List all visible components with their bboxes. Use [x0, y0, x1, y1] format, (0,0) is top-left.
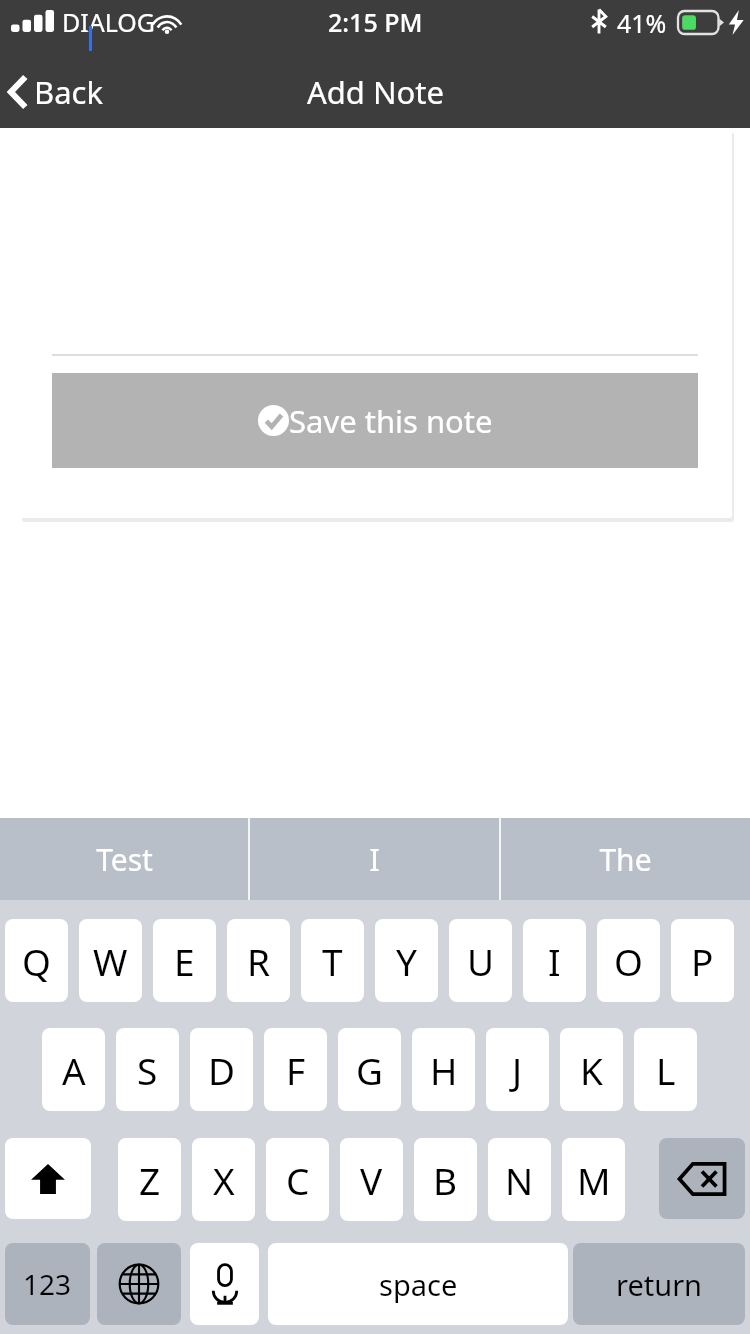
button[interactable]: U — [449, 919, 512, 1002]
staticText: U — [467, 936, 495, 986]
button[interactable]: T — [301, 919, 364, 1002]
button[interactable]: G — [338, 1028, 401, 1111]
button[interactable]: Shift — [5, 1138, 91, 1219]
staticText: B — [433, 1155, 458, 1205]
button[interactable]: A — [42, 1028, 105, 1111]
button[interactable]: M — [562, 1138, 625, 1221]
staticText: P — [691, 936, 714, 986]
button[interactable]: 123 — [5, 1243, 90, 1325]
button[interactable]: Z — [118, 1138, 181, 1221]
button[interactable]: F — [264, 1028, 327, 1111]
staticText: N — [505, 1155, 534, 1205]
staticText: Q — [22, 936, 51, 986]
staticText: L — [656, 1045, 676, 1095]
staticText: Z — [139, 1155, 161, 1205]
staticText: R — [247, 936, 271, 986]
staticText: return — [616, 1265, 703, 1304]
button[interactable]: Y — [375, 919, 438, 1002]
staticText: C — [286, 1155, 310, 1205]
button[interactable]: L — [634, 1028, 697, 1111]
button[interactable]: B — [414, 1138, 477, 1221]
button[interactable]: return — [573, 1243, 745, 1325]
staticText: I — [369, 839, 380, 880]
button[interactable]: O — [597, 919, 660, 1002]
button[interactable]: V — [340, 1138, 403, 1221]
button[interactable]: E — [153, 919, 216, 1002]
button[interactable]: space — [268, 1243, 568, 1325]
staticText: W — [93, 936, 128, 986]
staticText: 41% — [617, 6, 667, 40]
button[interactable]: R — [227, 919, 290, 1002]
staticText: S — [137, 1045, 158, 1095]
button[interactable]: Test — [0, 818, 248, 900]
staticText: V — [360, 1155, 383, 1205]
button[interactable]: Save this note — [52, 373, 698, 468]
button[interactable]: C — [266, 1138, 329, 1221]
button[interactable]: D — [190, 1028, 253, 1111]
staticText: X — [213, 1155, 235, 1205]
staticText: Save this note — [289, 400, 493, 442]
button[interactable]: W — [79, 919, 142, 1002]
button[interactable]: J — [486, 1028, 549, 1111]
button[interactable]: X — [192, 1138, 255, 1221]
staticText: Test — [96, 839, 153, 880]
staticText: O — [614, 936, 643, 986]
button[interactable]: S — [116, 1028, 179, 1111]
staticText: Add Note — [307, 71, 444, 113]
staticText: 123 — [23, 1265, 72, 1303]
staticText: DIALOG — [62, 5, 156, 39]
staticText: The — [599, 839, 652, 880]
staticText: 2:15 PM — [328, 5, 423, 39]
staticText: T — [322, 936, 343, 986]
button[interactable]: Change keyboard language — [97, 1243, 181, 1325]
button[interactable]: H — [412, 1028, 475, 1111]
staticText: F — [286, 1045, 306, 1095]
button[interactable]: I — [250, 818, 499, 900]
staticText: H — [430, 1045, 458, 1095]
button[interactable]: N — [488, 1138, 551, 1221]
button[interactable]: I — [523, 919, 586, 1002]
staticText: G — [356, 1045, 383, 1095]
staticText: J — [512, 1045, 523, 1095]
button[interactable]: K — [560, 1028, 623, 1111]
staticText: K — [580, 1045, 603, 1095]
staticText: M — [577, 1155, 611, 1205]
staticText: Back — [34, 71, 103, 113]
button[interactable]: Backspace — [659, 1138, 745, 1219]
button[interactable]: Dictation — [190, 1243, 259, 1325]
button[interactable]: Q — [5, 919, 68, 1002]
staticText: space — [379, 1265, 458, 1304]
button[interactable]: Back — [0, 65, 119, 119]
staticText: A — [62, 1045, 86, 1095]
button[interactable]: P — [671, 919, 734, 1002]
staticText: I — [548, 936, 561, 986]
staticText: D — [208, 1045, 236, 1095]
button[interactable]: The — [501, 818, 750, 900]
staticText: E — [174, 936, 195, 986]
staticText: Y — [396, 936, 417, 986]
